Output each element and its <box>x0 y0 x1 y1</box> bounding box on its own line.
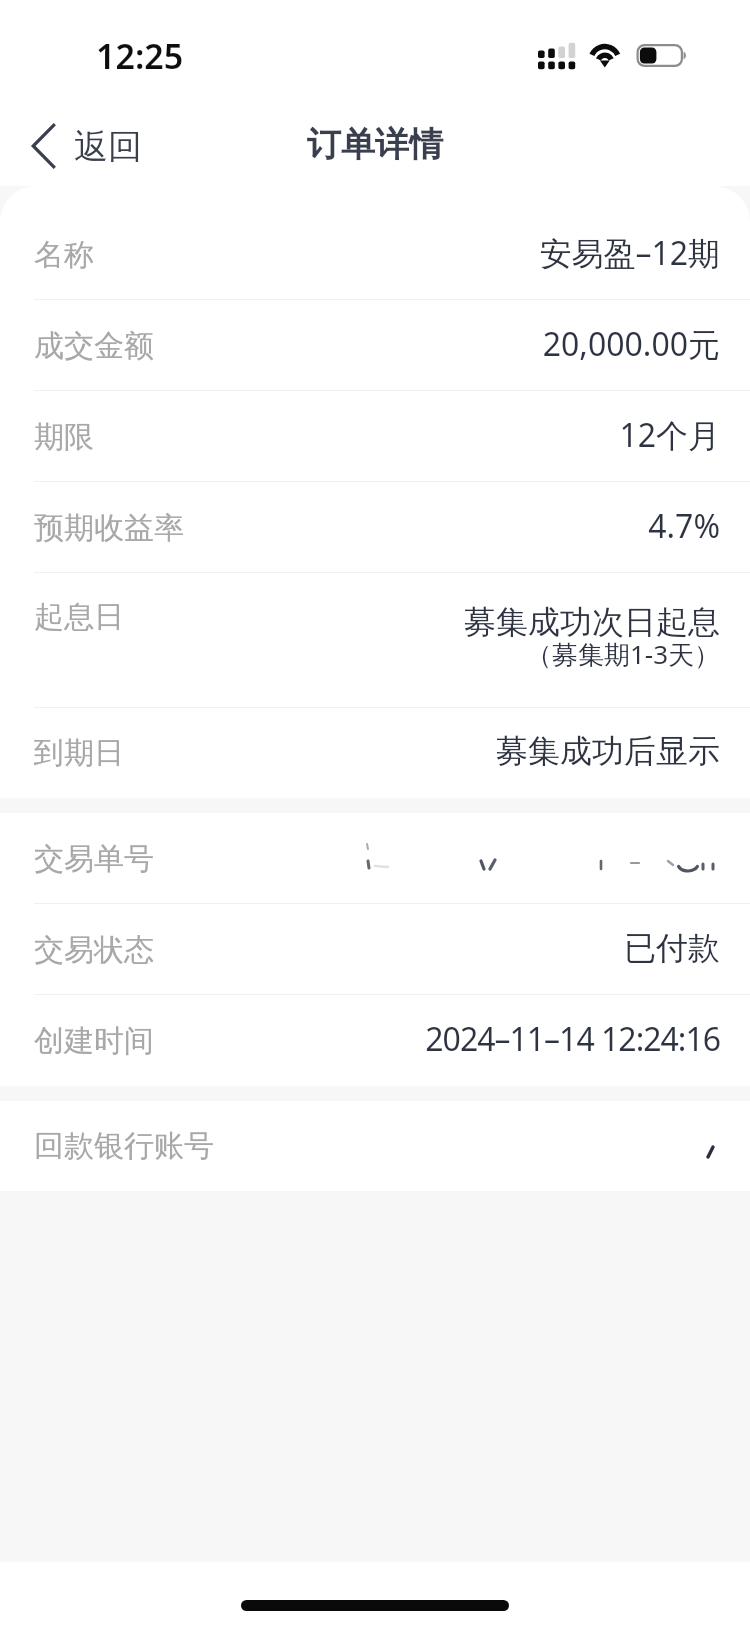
staticText: 订单详情 <box>307 123 443 166</box>
staticText: 起息日 <box>34 598 124 636</box>
staticText: 名称 <box>34 236 94 274</box>
staticText: 20,000.00元 <box>542 322 720 366</box>
button[interactable]: 名称 <box>0 209 750 300</box>
staticText: 4.7% <box>648 504 720 548</box>
staticText: 2024–11–14 12:24:16 <box>425 1017 720 1061</box>
staticText: 已付款 <box>624 928 720 968</box>
staticText: （募集期1-3天） <box>525 636 720 672</box>
staticText: 预期收益率 <box>34 509 184 547</box>
button[interactable]: 返回 <box>0 108 160 174</box>
staticText: 募集成功次日起息 <box>464 602 720 642</box>
button[interactable]: 创建时间 <box>0 995 750 1086</box>
staticText: 成交金额 <box>34 327 154 365</box>
button[interactable]: 到期日 <box>0 708 750 798</box>
staticText: 创建时间 <box>34 1022 154 1060</box>
staticText: 交易单号 <box>34 840 154 878</box>
staticText: 回款银行账号 <box>34 1127 214 1165</box>
staticText: 12个月 <box>619 413 720 457</box>
staticText: 到期日 <box>34 734 124 772</box>
staticText: 交易状态 <box>34 931 154 969</box>
button[interactable]: 起息日 <box>0 573 750 708</box>
button[interactable]: 交易状态 <box>0 904 750 995</box>
button[interactable]: 期限 <box>0 391 750 482</box>
staticText: 募集成功后显示 <box>496 731 720 771</box>
button[interactable]: 交易单号 <box>0 813 750 904</box>
staticText: 返回 <box>74 125 142 168</box>
button[interactable]: 预期收益率 <box>0 482 750 573</box>
button[interactable]: 回款银行账号 <box>0 1101 750 1191</box>
staticText: 期限 <box>34 418 94 456</box>
staticText: 12:25 <box>96 33 184 79</box>
staticText: 安易盈–12期 <box>539 231 720 275</box>
button[interactable]: 成交金额 <box>0 300 750 391</box>
